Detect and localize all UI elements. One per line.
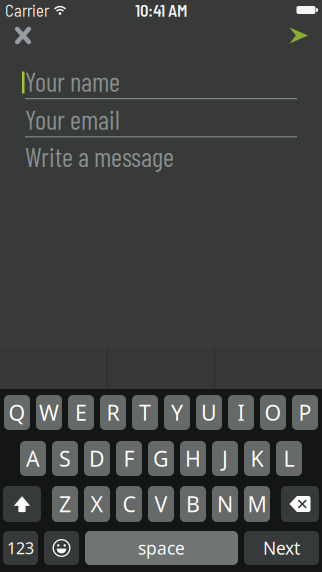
staticText: W [39,398,59,427]
staticText: 123 [7,537,34,559]
staticText: H [185,444,201,473]
staticText: L [283,444,294,473]
button[interactable]: V [148,486,174,522]
staticText: A [26,444,40,473]
button[interactable]: R [100,395,126,430]
staticText: Y [171,398,183,427]
staticText: D [89,444,105,473]
button[interactable]: O [260,395,286,430]
button[interactable]: F [116,441,142,476]
button[interactable]: Your email [25,111,297,137]
button[interactable]: Z [52,486,78,522]
button[interactable]: H [180,441,206,476]
button[interactable]: J [212,441,238,476]
button[interactable]: T [132,395,158,430]
button[interactable]: N [212,486,238,522]
button[interactable]: E [68,395,94,430]
button[interactable]: A [20,441,46,476]
staticText: Next [263,536,300,559]
staticText: R [106,398,119,427]
staticText: X [90,490,103,518]
button[interactable]: Close [15,27,31,44]
button[interactable]: D [84,441,110,476]
staticText: Your name [25,65,120,97]
button[interactable]: Write a message [25,148,297,168]
staticText: E [75,398,87,427]
staticText: G [153,444,169,473]
staticText: Carrier [5,0,49,20]
button[interactable]: W [36,395,62,430]
staticText: J [222,444,228,473]
staticText: space [138,536,185,559]
button[interactable]: S [52,441,78,476]
staticText: B [186,490,200,518]
button[interactable]: Shift [3,486,41,522]
staticText: F [123,444,134,473]
staticText: U [201,398,217,427]
staticText: O [264,398,281,427]
button[interactable]: X [84,486,110,522]
staticText: K [250,444,263,473]
staticText: S [59,444,71,473]
button[interactable]: M [244,486,270,522]
button[interactable]: Your name [25,73,297,99]
staticText: 10:41 AM [135,0,187,20]
staticText: P [298,398,311,427]
staticText: Your email [25,103,120,135]
button[interactable]: B [180,486,206,522]
button[interactable]: Y [164,395,190,430]
button[interactable]: G [148,441,174,476]
button[interactable]: Next [244,531,319,565]
button[interactable]: Q [4,395,30,430]
button[interactable]: P [292,395,318,430]
button[interactable]: C [116,486,142,522]
button[interactable]: L [276,441,302,476]
button[interactable]: U [196,395,222,430]
button[interactable]: Numbers [3,531,38,565]
button[interactable]: space [85,531,238,565]
button[interactable]: Emoji [44,531,79,565]
staticText: Q [8,398,25,427]
staticText: M [247,490,266,518]
staticText: C [122,490,135,518]
staticText: V [154,490,167,518]
button[interactable]: Send [289,27,308,43]
staticText: N [217,490,233,518]
staticText: T [139,398,151,427]
button[interactable]: I [228,395,254,430]
staticText: Z [59,490,71,518]
staticText: Write a message [25,140,174,172]
button[interactable]: Delete [281,486,319,522]
staticText: I [237,398,244,427]
button[interactable]: K [244,441,270,476]
